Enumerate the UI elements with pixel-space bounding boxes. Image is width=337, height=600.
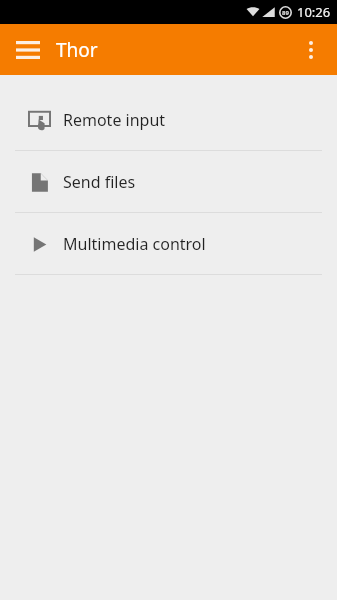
staticText: 89 — [282, 9, 289, 17]
button[interactable]: Multimedia control — [0, 213, 337, 274]
staticText: 10:26 — [297, 3, 331, 21]
button[interactable]: Open navigation drawer — [8, 30, 48, 70]
staticText: Send files — [63, 171, 136, 193]
button[interactable]: More options — [289, 28, 333, 72]
staticText: Remote input — [63, 109, 166, 131]
button[interactable]: Send files — [0, 151, 337, 212]
staticText: Thor — [56, 37, 98, 63]
staticText: Multimedia control — [63, 233, 206, 255]
button[interactable]: Remote input — [0, 89, 337, 150]
